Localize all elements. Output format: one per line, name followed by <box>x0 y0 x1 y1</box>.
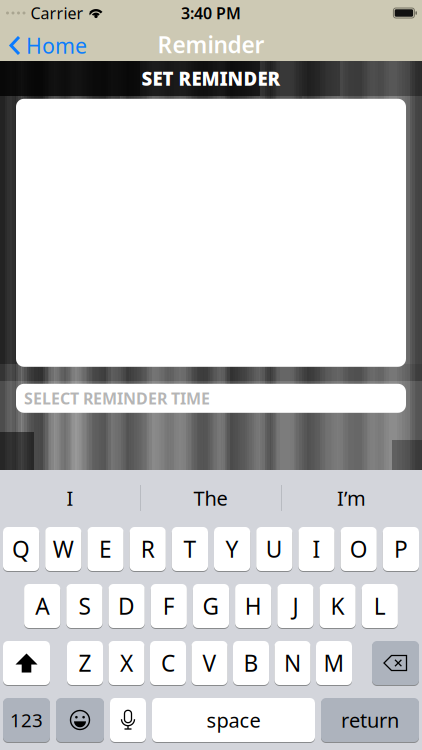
button[interactable]: Emoji <box>56 697 104 742</box>
staticText: N <box>284 648 301 678</box>
staticText: R <box>141 534 155 564</box>
staticText: B <box>243 648 258 678</box>
staticText: F <box>163 591 175 621</box>
button[interactable]: I <box>298 526 335 571</box>
staticText: P <box>394 534 408 564</box>
staticText: A <box>35 591 49 621</box>
button[interactable]: A <box>24 583 60 628</box>
button[interactable]: I <box>0 469 140 526</box>
staticText: Home <box>26 31 87 60</box>
button[interactable]: Home <box>0 31 87 60</box>
button[interactable]: Q <box>3 526 39 571</box>
staticText: Y <box>226 534 239 564</box>
button[interactable]: F <box>151 583 187 628</box>
staticText: C <box>161 648 175 678</box>
staticText: Z <box>78 648 91 678</box>
staticText: L <box>374 591 386 621</box>
button[interactable]: V <box>191 640 227 685</box>
staticText: U <box>266 534 283 564</box>
button[interactable]: X <box>108 640 144 685</box>
button[interactable]: T <box>172 526 208 571</box>
button[interactable]: Shift <box>3 640 50 685</box>
button[interactable]: Y <box>214 526 250 571</box>
staticText: W <box>53 534 74 564</box>
staticText: X <box>120 648 133 678</box>
button[interactable]: U <box>256 526 292 571</box>
button[interactable]: L <box>362 583 398 628</box>
staticText: D <box>118 591 135 621</box>
button[interactable]: H <box>235 583 271 628</box>
button[interactable]: The <box>140 469 281 526</box>
staticText: space <box>206 707 260 733</box>
staticText: return <box>341 707 399 733</box>
staticText: K <box>331 591 345 621</box>
button[interactable]: K <box>319 583 356 628</box>
staticText: Reminder <box>157 29 264 59</box>
button[interactable]: Delete <box>372 640 419 685</box>
button[interactable]: Z <box>67 640 103 685</box>
staticText: O <box>350 534 368 564</box>
button[interactable]: R <box>130 526 166 571</box>
button[interactable]: return <box>321 697 419 742</box>
staticText: Q <box>12 534 30 564</box>
staticText: I <box>66 485 73 511</box>
staticText: T <box>183 534 196 564</box>
button[interactable]: J <box>277 583 313 628</box>
button[interactable]: B <box>233 640 269 685</box>
staticText: I’m <box>337 485 366 511</box>
button[interactable]: E <box>87 526 124 571</box>
button[interactable]: Dictate <box>110 697 146 742</box>
staticText: Carrier <box>30 2 83 24</box>
staticText: H <box>245 591 262 621</box>
staticText: S <box>78 591 90 621</box>
staticText: 3:40 PM <box>181 2 241 24</box>
staticText: SELECT REMINDER TIME <box>24 388 210 409</box>
button[interactable]: space <box>152 697 315 742</box>
button[interactable]: SELECT REMINDER TIME <box>16 384 406 413</box>
staticText: J <box>292 591 298 621</box>
button[interactable]: G <box>193 583 229 628</box>
button[interactable]: P <box>383 526 419 571</box>
staticText: V <box>202 648 216 678</box>
button[interactable]: M <box>316 640 352 685</box>
staticText: I <box>312 534 320 564</box>
staticText: The <box>193 485 227 511</box>
button[interactable]: S <box>66 583 102 628</box>
staticText: E <box>99 534 112 564</box>
staticText: 123 <box>10 708 43 732</box>
button[interactable]: C <box>150 640 186 685</box>
button[interactable]: O <box>341 526 377 571</box>
button[interactable]: D <box>108 583 145 628</box>
button[interactable]: 123 <box>3 697 50 742</box>
staticText: G <box>202 591 219 621</box>
button[interactable]: I’m <box>281 469 422 526</box>
staticText: SET REMINDER <box>141 66 280 91</box>
button[interactable]: N <box>274 640 310 685</box>
staticText: M <box>323 648 344 678</box>
button[interactable]: W <box>45 526 81 571</box>
